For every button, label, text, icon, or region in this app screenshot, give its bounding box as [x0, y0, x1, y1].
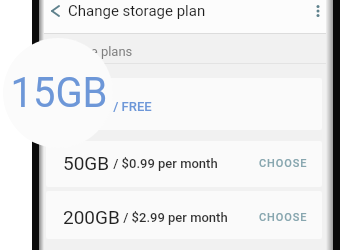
staticText: / $0.99 per month — [110, 156, 218, 171]
staticText: 15GB — [10, 68, 107, 117]
staticText: CHOOSE — [259, 211, 308, 224]
button[interactable]: 15GB — [46, 78, 322, 130]
button[interactable]: Zoomed plan 15GB — [3, 38, 113, 148]
staticText: Change storage plan — [68, 2, 206, 20]
staticText: / FREE — [110, 99, 152, 114]
button[interactable]: 50GB — [46, 141, 322, 187]
staticText: 200GB — [63, 206, 120, 228]
staticText: / $2.99 per month — [120, 210, 228, 225]
button[interactable]: Navigate up — [44, 0, 66, 22]
staticText: 15GB — [63, 95, 110, 117]
staticText: Storage plans — [53, 44, 133, 59]
staticText: CHOOSE — [259, 157, 308, 170]
button[interactable]: 200GB — [46, 191, 322, 239]
button[interactable]: More options — [307, 0, 329, 22]
staticText: 50GB — [63, 152, 110, 174]
